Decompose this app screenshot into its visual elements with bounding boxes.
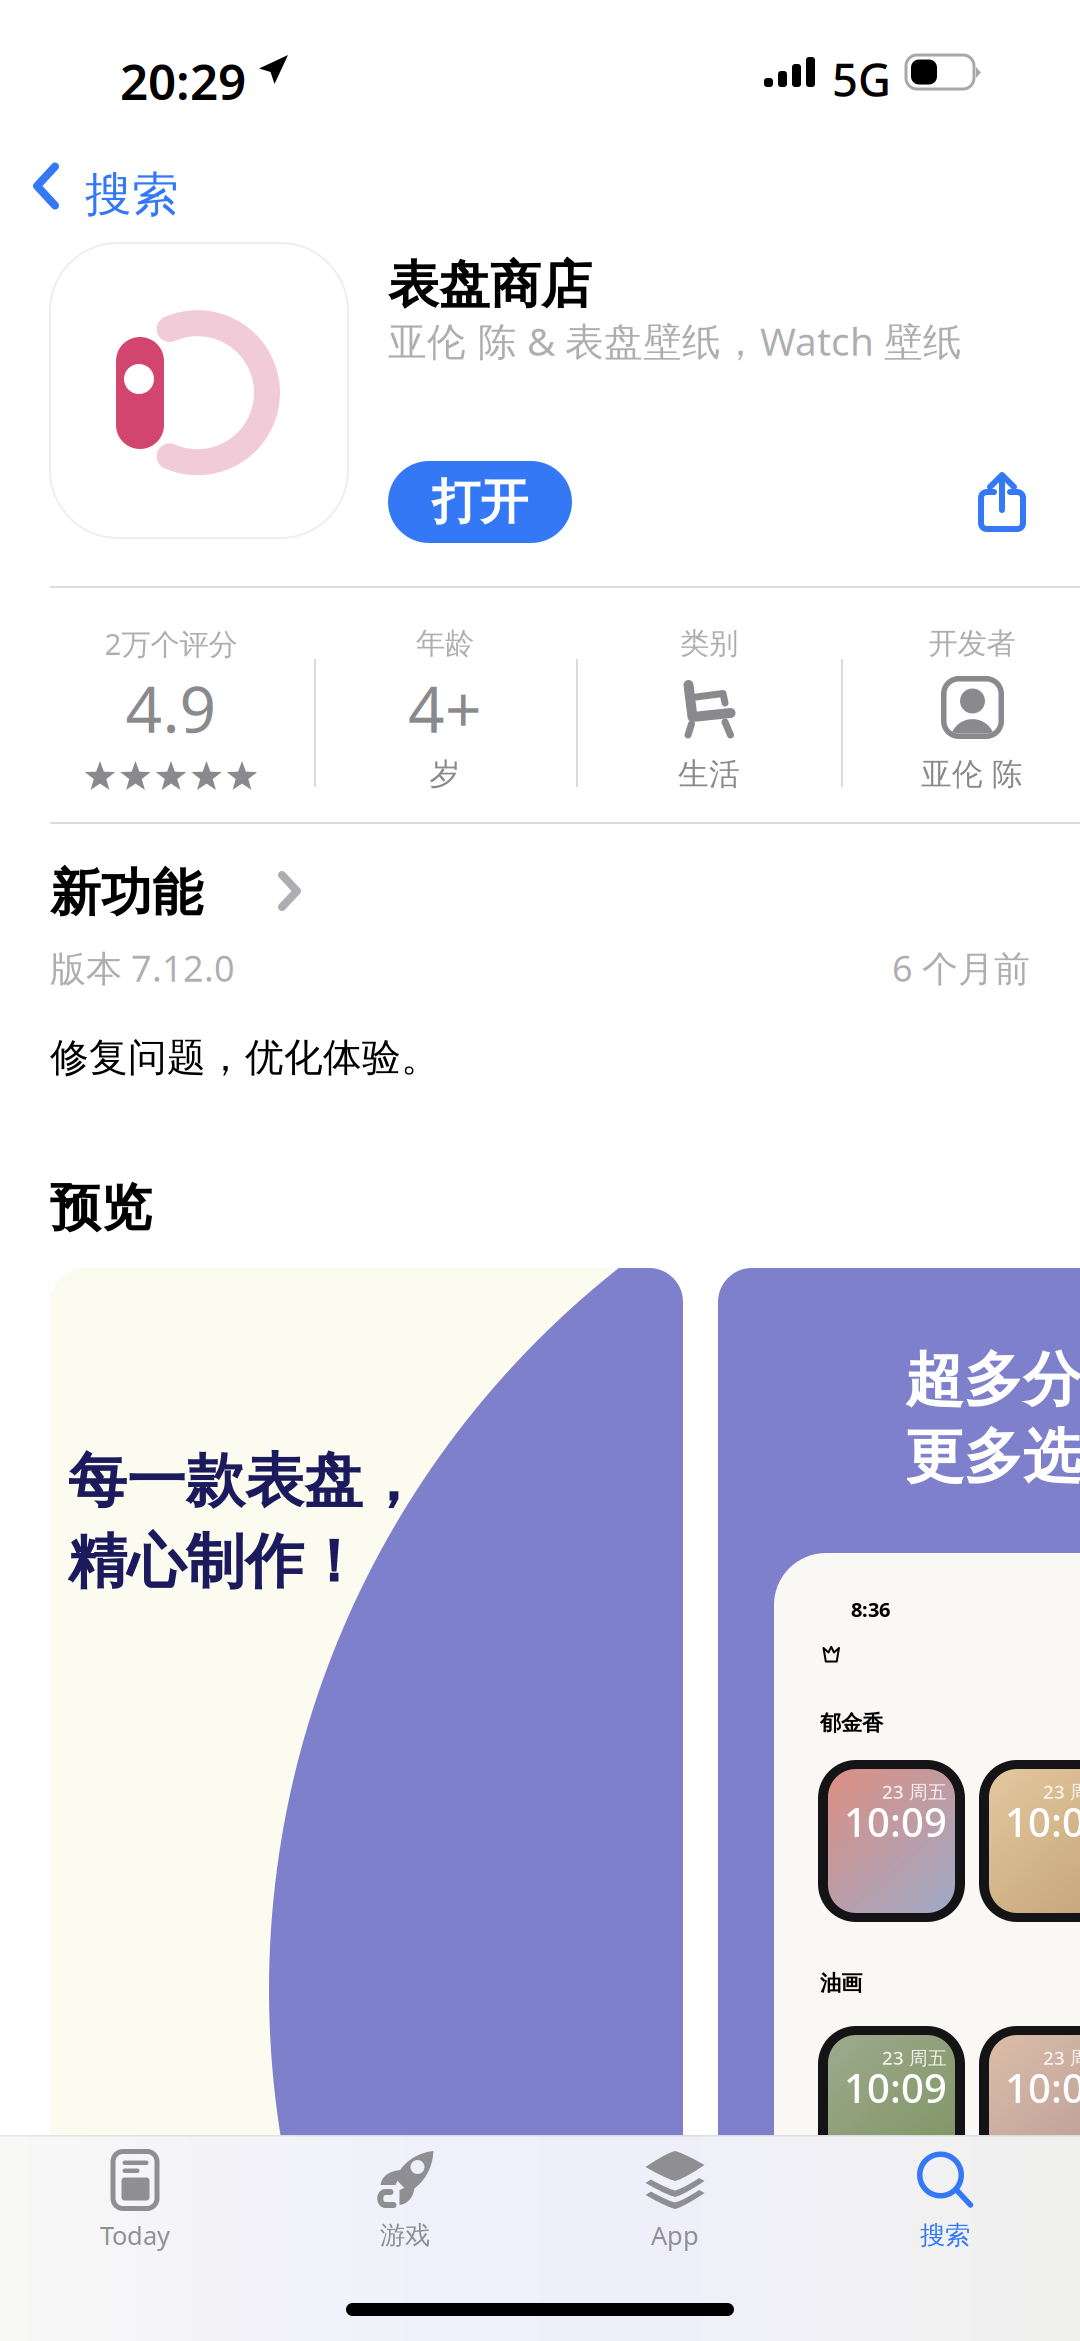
staticText: 6 个月前 bbox=[892, 944, 1030, 992]
staticText: 亚伦 陈 bbox=[921, 755, 1023, 793]
staticText: 2万个评分 bbox=[104, 624, 237, 663]
staticText: 新功能 bbox=[50, 862, 203, 924]
staticText: 表盘商店 bbox=[388, 254, 592, 316]
staticText: 搜索 bbox=[920, 2220, 970, 2251]
staticText: 版本 7.12.0 bbox=[50, 944, 235, 992]
staticText: 亚伦 陈 & 表盘壁纸，Watch 壁纸 bbox=[388, 315, 962, 366]
staticText: 10:09 bbox=[844, 1795, 947, 1848]
staticText: 类别 bbox=[680, 625, 738, 661]
staticText: App bbox=[651, 2218, 699, 2252]
staticText: 10:09 bbox=[844, 2061, 947, 2114]
staticText: 超多分类 bbox=[905, 1344, 1080, 1416]
staticText: Today bbox=[100, 2218, 170, 2252]
staticText: 每一款表盘， bbox=[68, 1445, 422, 1517]
button[interactable]: 打开 bbox=[388, 461, 572, 543]
staticText: 23 周五 bbox=[882, 1779, 947, 1804]
staticText: 岁 bbox=[429, 755, 460, 793]
staticText: 搜索 bbox=[85, 166, 179, 223]
staticText: 更多选择 bbox=[905, 1421, 1080, 1493]
staticText: 4.9 bbox=[125, 665, 216, 750]
staticText: 油画 bbox=[820, 1970, 862, 1996]
staticText: 游戏 bbox=[380, 2220, 430, 2251]
staticText: 精心制作！ bbox=[68, 1526, 363, 1598]
staticText: 打开 bbox=[432, 472, 528, 531]
staticText: 郁金香 bbox=[820, 1710, 883, 1736]
staticText: 开发者 bbox=[928, 625, 1015, 661]
button[interactable]: Today bbox=[0, 2135, 1080, 2341]
button[interactable]: 搜索 bbox=[0, 2135, 1080, 2341]
button[interactable]: 游戏 bbox=[0, 2135, 1080, 2341]
staticText: 年龄 bbox=[416, 625, 474, 661]
staticText: 10:09 bbox=[1005, 2061, 1080, 2114]
staticText: 20:29 bbox=[120, 48, 246, 113]
button[interactable]: 新功能 bbox=[50, 862, 450, 916]
staticText: 预览 bbox=[50, 1177, 152, 1239]
staticText: 10:09 bbox=[1005, 1795, 1080, 1848]
staticText: 8:36 bbox=[851, 1596, 890, 1623]
button[interactable]: 搜索 bbox=[0, 0, 320, 240]
staticText: 修复问题，优化体验。 bbox=[50, 1034, 440, 1081]
button[interactable]: 分享 bbox=[957, 454, 1047, 550]
staticText: 4+ bbox=[408, 665, 482, 750]
staticText: 5G bbox=[832, 49, 891, 109]
staticText: 生活 bbox=[678, 755, 740, 793]
staticText: 23 周五 bbox=[882, 2045, 947, 2070]
button[interactable]: App bbox=[0, 2135, 1080, 2341]
staticText: 23 周五 bbox=[1043, 1779, 1080, 1804]
staticText: 23 周五 bbox=[1043, 2045, 1080, 2070]
